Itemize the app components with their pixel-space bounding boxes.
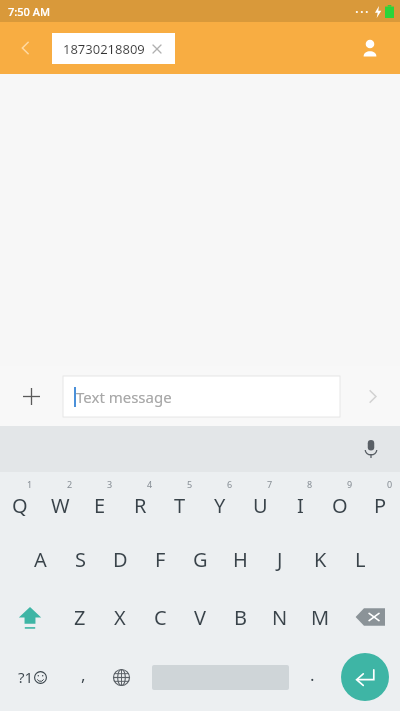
staticText: P — [374, 492, 387, 519]
button[interactable]: Z — [60, 588, 100, 646]
staticText: 4 — [147, 478, 153, 490]
staticText: K — [314, 546, 327, 573]
staticText: . — [310, 663, 315, 686]
button[interactable]: 6 — [200, 472, 240, 530]
button[interactable]: 1 — [0, 472, 40, 530]
staticText: N — [272, 604, 288, 631]
button[interactable]: 8 — [280, 472, 320, 530]
button[interactable]: 4 — [120, 472, 160, 530]
staticText: Q — [12, 492, 28, 519]
button[interactable]: , — [64, 658, 102, 696]
button[interactable]: V — [180, 588, 220, 646]
button[interactable]: D — [100, 530, 140, 588]
button[interactable]: G — [180, 530, 220, 588]
staticText: B — [234, 604, 247, 631]
button[interactable]: L — [340, 530, 380, 588]
staticText: G — [193, 546, 208, 573]
button[interactable]: Text message — [63, 376, 340, 417]
button[interactable]: 18730218809 — [52, 33, 175, 64]
staticText: S — [75, 546, 86, 573]
staticText: A — [34, 546, 47, 573]
button[interactable]: 7 — [240, 472, 280, 530]
staticText: 9 — [347, 478, 353, 490]
button[interactable]: Voice input — [354, 432, 388, 466]
staticText: 7 — [267, 478, 273, 490]
staticText: 6 — [227, 478, 233, 490]
button[interactable]: F — [140, 530, 180, 588]
button[interactable]: S — [60, 530, 100, 588]
staticText: D — [113, 546, 128, 573]
button[interactable]: Back — [8, 30, 44, 66]
button[interactable]: 2 — [40, 472, 80, 530]
staticText: 3 — [107, 478, 113, 490]
button[interactable]: H — [220, 530, 260, 588]
button[interactable]: Voice input — [0, 426, 400, 472]
staticText: J — [277, 546, 283, 573]
staticText: I — [297, 492, 304, 519]
button[interactable]: Change language — [102, 658, 140, 696]
staticText: M — [311, 604, 330, 631]
button[interactable]: Attach — [14, 379, 48, 413]
staticText: 5 — [187, 478, 193, 490]
staticText: 8 — [307, 478, 313, 490]
button[interactable]: X — [100, 588, 140, 646]
staticText: 0 — [387, 478, 393, 490]
staticText: 2 — [67, 478, 73, 490]
button[interactable]: 5 — [160, 472, 200, 530]
button[interactable]: Shift — [0, 588, 60, 646]
button[interactable]: Symbols and emoji — [8, 653, 56, 701]
button[interactable]: J — [260, 530, 300, 588]
staticText: Z — [74, 604, 86, 631]
staticText: H — [233, 546, 248, 573]
button[interactable]: Backspace — [340, 588, 400, 646]
staticText: 1 — [27, 478, 33, 490]
staticText: T — [174, 492, 186, 519]
button[interactable]: A — [20, 530, 60, 588]
button[interactable]: . — [295, 660, 329, 694]
button[interactable]: Send — [354, 378, 390, 414]
button[interactable]: 9 — [320, 472, 360, 530]
button[interactable]: Enter — [341, 653, 389, 701]
button[interactable]: Contacts — [350, 28, 390, 68]
staticText: O — [332, 492, 348, 519]
button[interactable]: 3 — [80, 472, 120, 530]
staticText: L — [355, 546, 366, 573]
staticText: ?1 — [18, 667, 34, 687]
staticText: C — [154, 604, 167, 631]
staticText: 7:50 AM — [8, 4, 51, 19]
button[interactable]: C — [140, 588, 180, 646]
staticText: X — [114, 604, 126, 631]
button[interactable]: N — [260, 588, 300, 646]
staticText: E — [94, 492, 106, 519]
staticText: R — [134, 492, 147, 519]
staticText: Text message — [76, 387, 172, 407]
staticText: 18730218809 — [63, 40, 145, 58]
staticText: W — [51, 492, 70, 519]
staticText: U — [253, 492, 268, 519]
staticText: , — [81, 663, 86, 686]
button[interactable]: B — [220, 588, 260, 646]
button[interactable]: 0 — [360, 472, 400, 530]
button[interactable]: M — [300, 588, 340, 646]
staticText: F — [155, 546, 166, 573]
staticText: V — [194, 604, 206, 631]
staticText: Y — [214, 492, 226, 519]
button[interactable]: K — [300, 530, 340, 588]
